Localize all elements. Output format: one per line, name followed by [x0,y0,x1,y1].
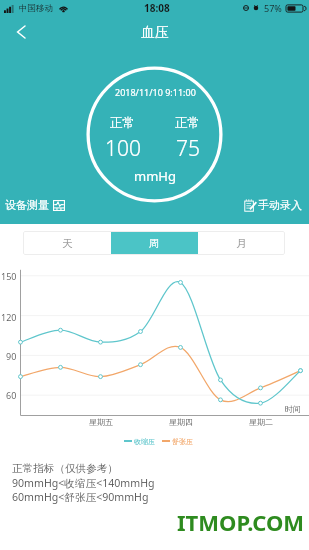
button[interactable]: 天 [23,231,111,255]
staticText: 设备测量 [5,198,49,212]
staticText: 血压 [141,24,169,42]
staticText: 月 [236,237,247,250]
staticText: 中国移动 [19,3,53,14]
staticText: 57% [264,2,282,14]
staticText: 天 [62,237,73,250]
staticText: mmHg [134,167,176,185]
staticText: 星期二 [249,417,273,427]
staticText: 75 [176,134,200,163]
button[interactable]: Back [3,20,38,44]
staticText: 100 [105,134,141,163]
staticText: 90 [6,350,17,362]
staticText: 18:08 [144,1,170,15]
staticText: 星期四 [169,417,193,427]
staticText: 正常 [110,115,135,131]
staticText: ITMOP.COM [177,507,305,537]
staticText: 150 [1,270,17,282]
button[interactable]: 月 [198,231,285,255]
staticText: 手动录入 [258,198,302,212]
staticText: 舒张压 [172,437,193,446]
staticText: 60mmHg<舒张压<90mmHg [12,490,149,504]
button[interactable]: 手动录入 [243,195,303,215]
staticText: 时间 [285,404,301,414]
staticText: 收缩压 [134,437,155,446]
button[interactable]: 设备测量 [4,195,66,215]
staticText: 120 [1,311,17,323]
staticText: 星期五 [89,417,113,427]
staticText: 正常 [175,115,200,131]
staticText: 60 [6,389,17,401]
staticText: 正常指标（仅供参考） [12,462,118,475]
staticText: 2018/11/10 9:11:00 [115,86,196,98]
staticText: 周 [149,237,160,250]
button[interactable]: 周 [111,231,198,255]
staticText: 90mmHg<收缩压<140mmHg [12,476,155,490]
